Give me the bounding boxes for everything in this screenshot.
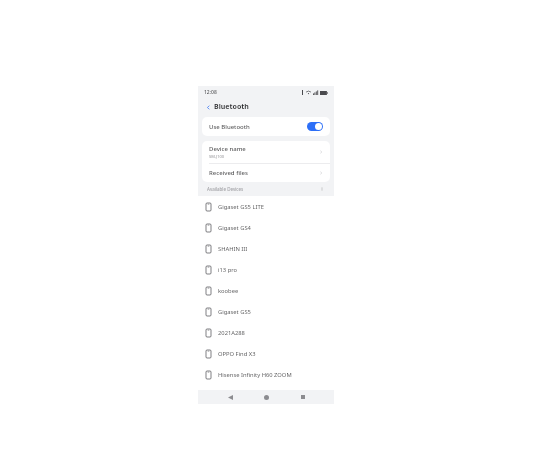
button[interactable]: SHAHIN III (198, 238, 334, 259)
staticText: OPPO Find X3 (218, 350, 256, 358)
button[interactable]: Gigaset GS5 LITE (198, 196, 334, 217)
staticText: SHAHIN III (218, 245, 248, 253)
staticText: Gigaset GS5 LITE (218, 203, 264, 211)
button[interactable]: Hisense Infinity H60 ZOOM (198, 364, 334, 385)
staticText: Device name (209, 145, 246, 153)
staticText: SM-J100 (209, 154, 225, 159)
staticText: Gigaset GS5 (218, 308, 251, 316)
button[interactable]: Received files (202, 164, 330, 182)
staticText: i13 pro (218, 266, 237, 274)
other: Back (204, 103, 212, 111)
other: Bluetooth on (307, 122, 323, 131)
staticText: Available Devices (207, 186, 319, 192)
button[interactable]: i13 pro (198, 259, 334, 280)
button[interactable]: 2021A288 (198, 322, 334, 343)
button[interactable]: Scan for devices (319, 186, 325, 192)
button[interactable]: koobee (198, 280, 334, 301)
button[interactable]: OPPO Find X3 (198, 343, 334, 364)
button[interactable]: Use Bluetooth (202, 117, 330, 136)
button[interactable]: Back (198, 99, 334, 114)
staticText: 2021A288 (218, 329, 245, 337)
button[interactable]: Gigaset GS5 (198, 301, 334, 322)
staticText: Use Bluetooth (209, 123, 250, 131)
staticText: Received files (209, 169, 319, 177)
button[interactable]: Device name (202, 141, 330, 163)
staticText: koobee (218, 287, 239, 295)
staticText: Gigaset GS4 (218, 224, 251, 232)
button[interactable]: Gigaset GS4 (198, 217, 334, 238)
button[interactable]: Recent apps (298, 392, 308, 402)
staticText: 12:08 (204, 89, 217, 96)
staticText: Bluetooth (214, 102, 249, 112)
staticText: Hisense Infinity H60 ZOOM (218, 371, 292, 379)
button[interactable]: Back (225, 392, 235, 402)
button[interactable]: Home (261, 392, 271, 402)
